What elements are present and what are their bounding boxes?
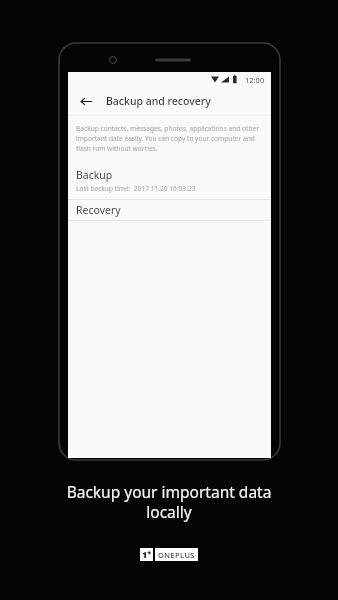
staticText: Backup contacts, messages, photos, appli…: [76, 124, 261, 153]
staticText: ONEPLUS: [158, 550, 195, 560]
button[interactable]: Backup: [68, 162, 271, 199]
staticText: Last backup time: 2017.11.20 16:03:23: [76, 184, 196, 193]
button[interactable]: Back: [76, 91, 96, 111]
staticText: Backup: [76, 168, 113, 182]
button[interactable]: Recovery: [68, 200, 271, 220]
button[interactable]: OnePlus: [140, 548, 198, 561]
staticText: Recovery: [76, 203, 121, 217]
staticText: Backup your important data locally: [0, 481, 338, 522]
staticText: 12:00: [245, 75, 265, 85]
staticText: Backup and recovery: [106, 94, 211, 108]
